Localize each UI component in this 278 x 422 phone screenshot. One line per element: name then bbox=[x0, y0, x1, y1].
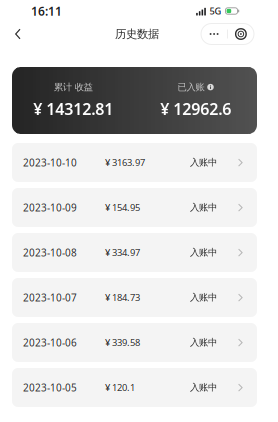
button[interactable]: 2023-10-09 bbox=[12, 188, 257, 227]
staticText: 入账中 bbox=[190, 247, 217, 258]
staticText: ¥ 3163.97 bbox=[105, 156, 145, 169]
staticText: ¥ 339.58 bbox=[105, 336, 140, 349]
staticText: 2023-10-08 bbox=[23, 246, 77, 259]
button[interactable]: More options bbox=[201, 23, 227, 45]
staticText: 2023-10-09 bbox=[23, 201, 77, 214]
button[interactable]: 2023-10-06 bbox=[12, 323, 257, 362]
staticText: 历史数据 bbox=[115, 27, 159, 41]
staticText: 入账中 bbox=[190, 292, 217, 303]
button[interactable]: 2023-10-05 bbox=[12, 368, 257, 407]
staticText: 2023-10-07 bbox=[23, 291, 77, 304]
staticText: 入账中 bbox=[190, 202, 217, 213]
staticText: 16:11 bbox=[31, 3, 62, 19]
staticText: ¥ 154.95 bbox=[105, 201, 140, 214]
staticText: 2023-10-10 bbox=[23, 156, 77, 169]
staticText: 已入账 bbox=[177, 81, 204, 93]
staticText: ¥ 12962.6 bbox=[160, 98, 231, 120]
button[interactable]: Back bbox=[7, 23, 29, 45]
button[interactable]: 2023-10-08 bbox=[12, 233, 257, 272]
staticText: 2023-10-05 bbox=[23, 381, 77, 394]
button[interactable]: 2023-10-07 bbox=[12, 278, 257, 317]
staticText: ¥ 120.1 bbox=[105, 381, 135, 394]
button[interactable]: Close mini program bbox=[228, 23, 254, 45]
staticText: 5G bbox=[209, 5, 221, 17]
staticText: 入账中 bbox=[190, 382, 217, 393]
staticText: ¥ 334.97 bbox=[105, 246, 140, 259]
staticText: ¥ 184.73 bbox=[105, 291, 140, 304]
staticText: 2023-10-06 bbox=[23, 336, 77, 349]
staticText: 入账中 bbox=[190, 157, 217, 168]
staticText: 入账中 bbox=[190, 337, 217, 348]
button[interactable]: 2023-10-10 bbox=[12, 143, 257, 182]
staticText: 累计 收益 bbox=[54, 81, 93, 93]
staticText: ¥ 14312.81 bbox=[33, 98, 113, 120]
